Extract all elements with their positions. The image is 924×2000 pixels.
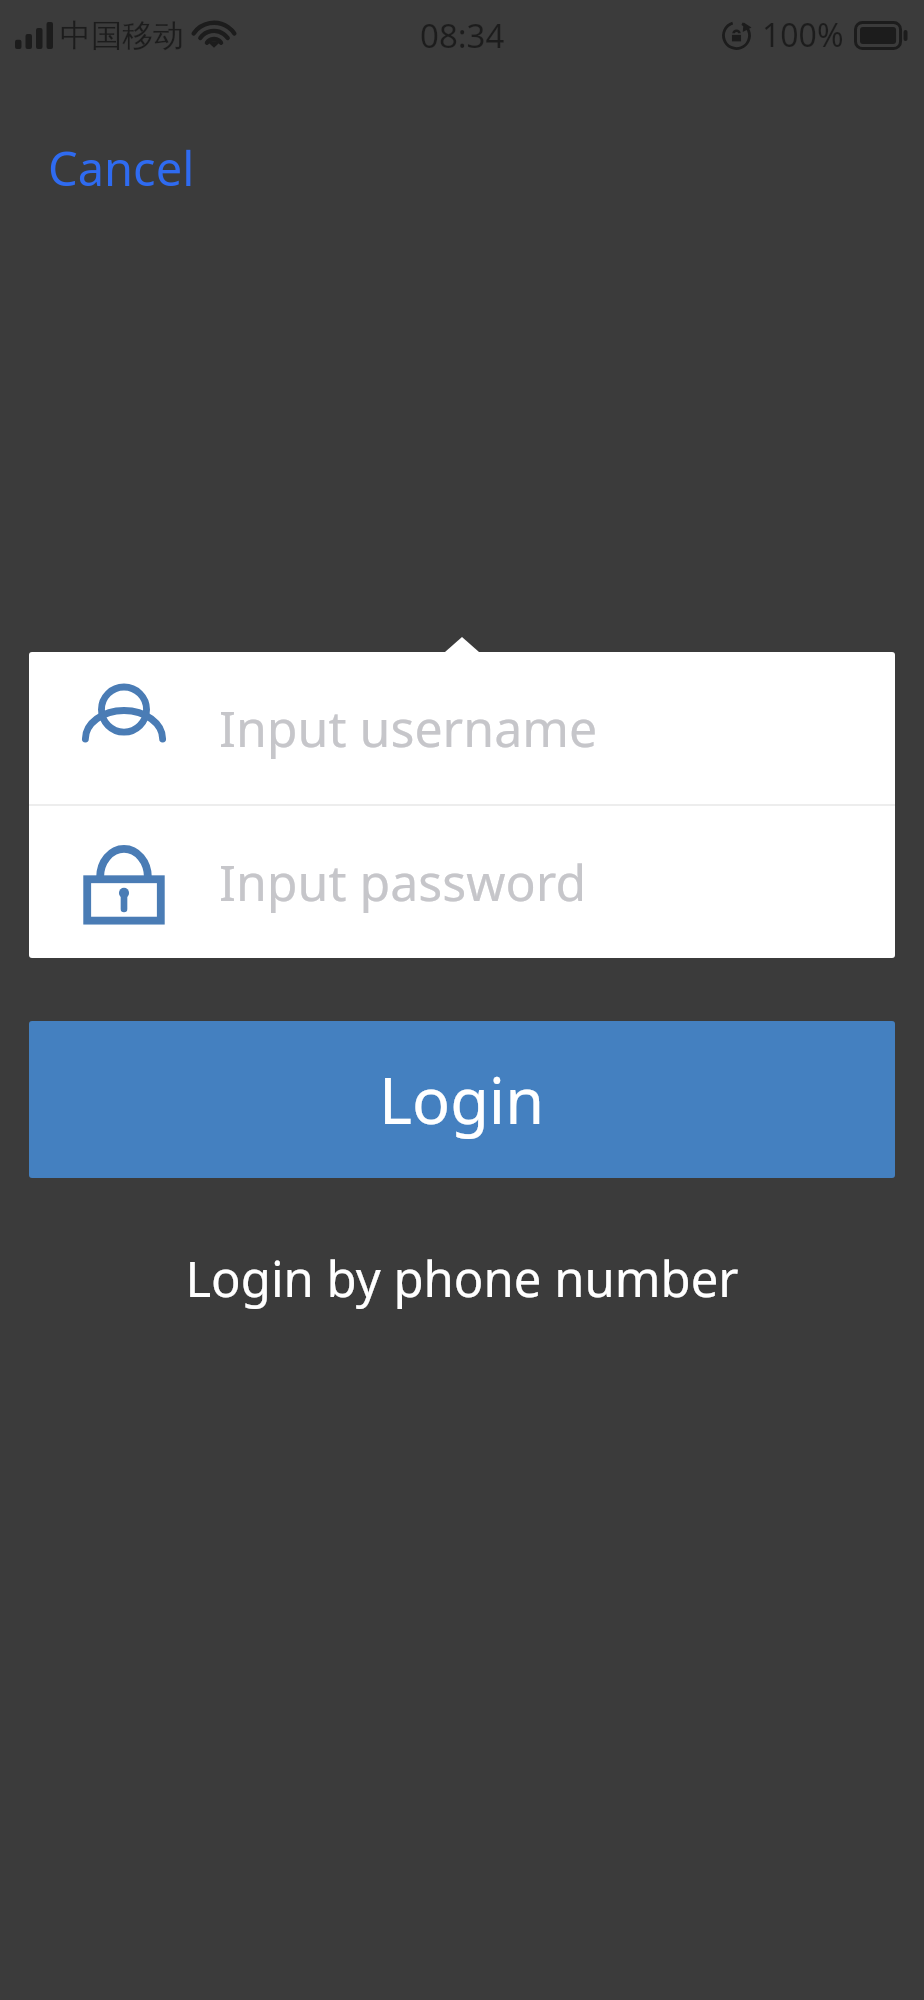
other: Username <box>29 682 219 774</box>
staticText: Input username <box>219 694 598 762</box>
staticText: 中国移动 <box>60 16 184 55</box>
staticText: 08:34 <box>420 13 505 58</box>
button[interactable]: Login <box>29 1021 895 1178</box>
button[interactable]: Password <box>29 806 895 958</box>
staticText: Cancel <box>48 136 195 200</box>
button[interactable]: Username <box>29 652 895 804</box>
staticText: Input password <box>219 848 587 916</box>
staticText: Login <box>379 1057 545 1143</box>
staticText: Login by phone number <box>185 1245 739 1312</box>
other: Password <box>29 836 219 928</box>
button[interactable]: Login by phone number <box>161 1233 763 1324</box>
button[interactable]: Cancel <box>26 126 217 210</box>
staticText: 100% <box>762 13 844 57</box>
